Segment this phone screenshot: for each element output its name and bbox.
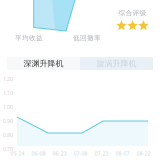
staticText: 旋涡升降机: [96, 59, 136, 68]
staticText: 0.90: [3, 117, 13, 125]
staticText: 1.00: [3, 103, 13, 111]
staticText: 低回撤率: [73, 34, 101, 42]
staticText: 1.20: [3, 75, 13, 83]
staticText: 08-22: [136, 150, 150, 157]
staticText: 0.70: [3, 145, 13, 153]
staticText: 综合评级: [118, 9, 146, 17]
button[interactable]: 旋涡升降机: [80, 57, 153, 70]
staticText: 06-23: [52, 150, 66, 157]
staticText: 05-24: [10, 150, 24, 157]
staticText: 07-08: [73, 150, 87, 157]
staticText: 0.80: [3, 131, 13, 139]
staticText: 08-07: [115, 150, 129, 157]
staticText: 深渊升降机: [23, 59, 63, 68]
staticText: 平均收益: [15, 34, 43, 42]
staticText: 06-08: [31, 150, 45, 157]
staticText: 1.10: [3, 89, 13, 97]
staticText: 07-23: [94, 150, 108, 157]
button[interactable]: 深渊升降机: [7, 57, 80, 70]
